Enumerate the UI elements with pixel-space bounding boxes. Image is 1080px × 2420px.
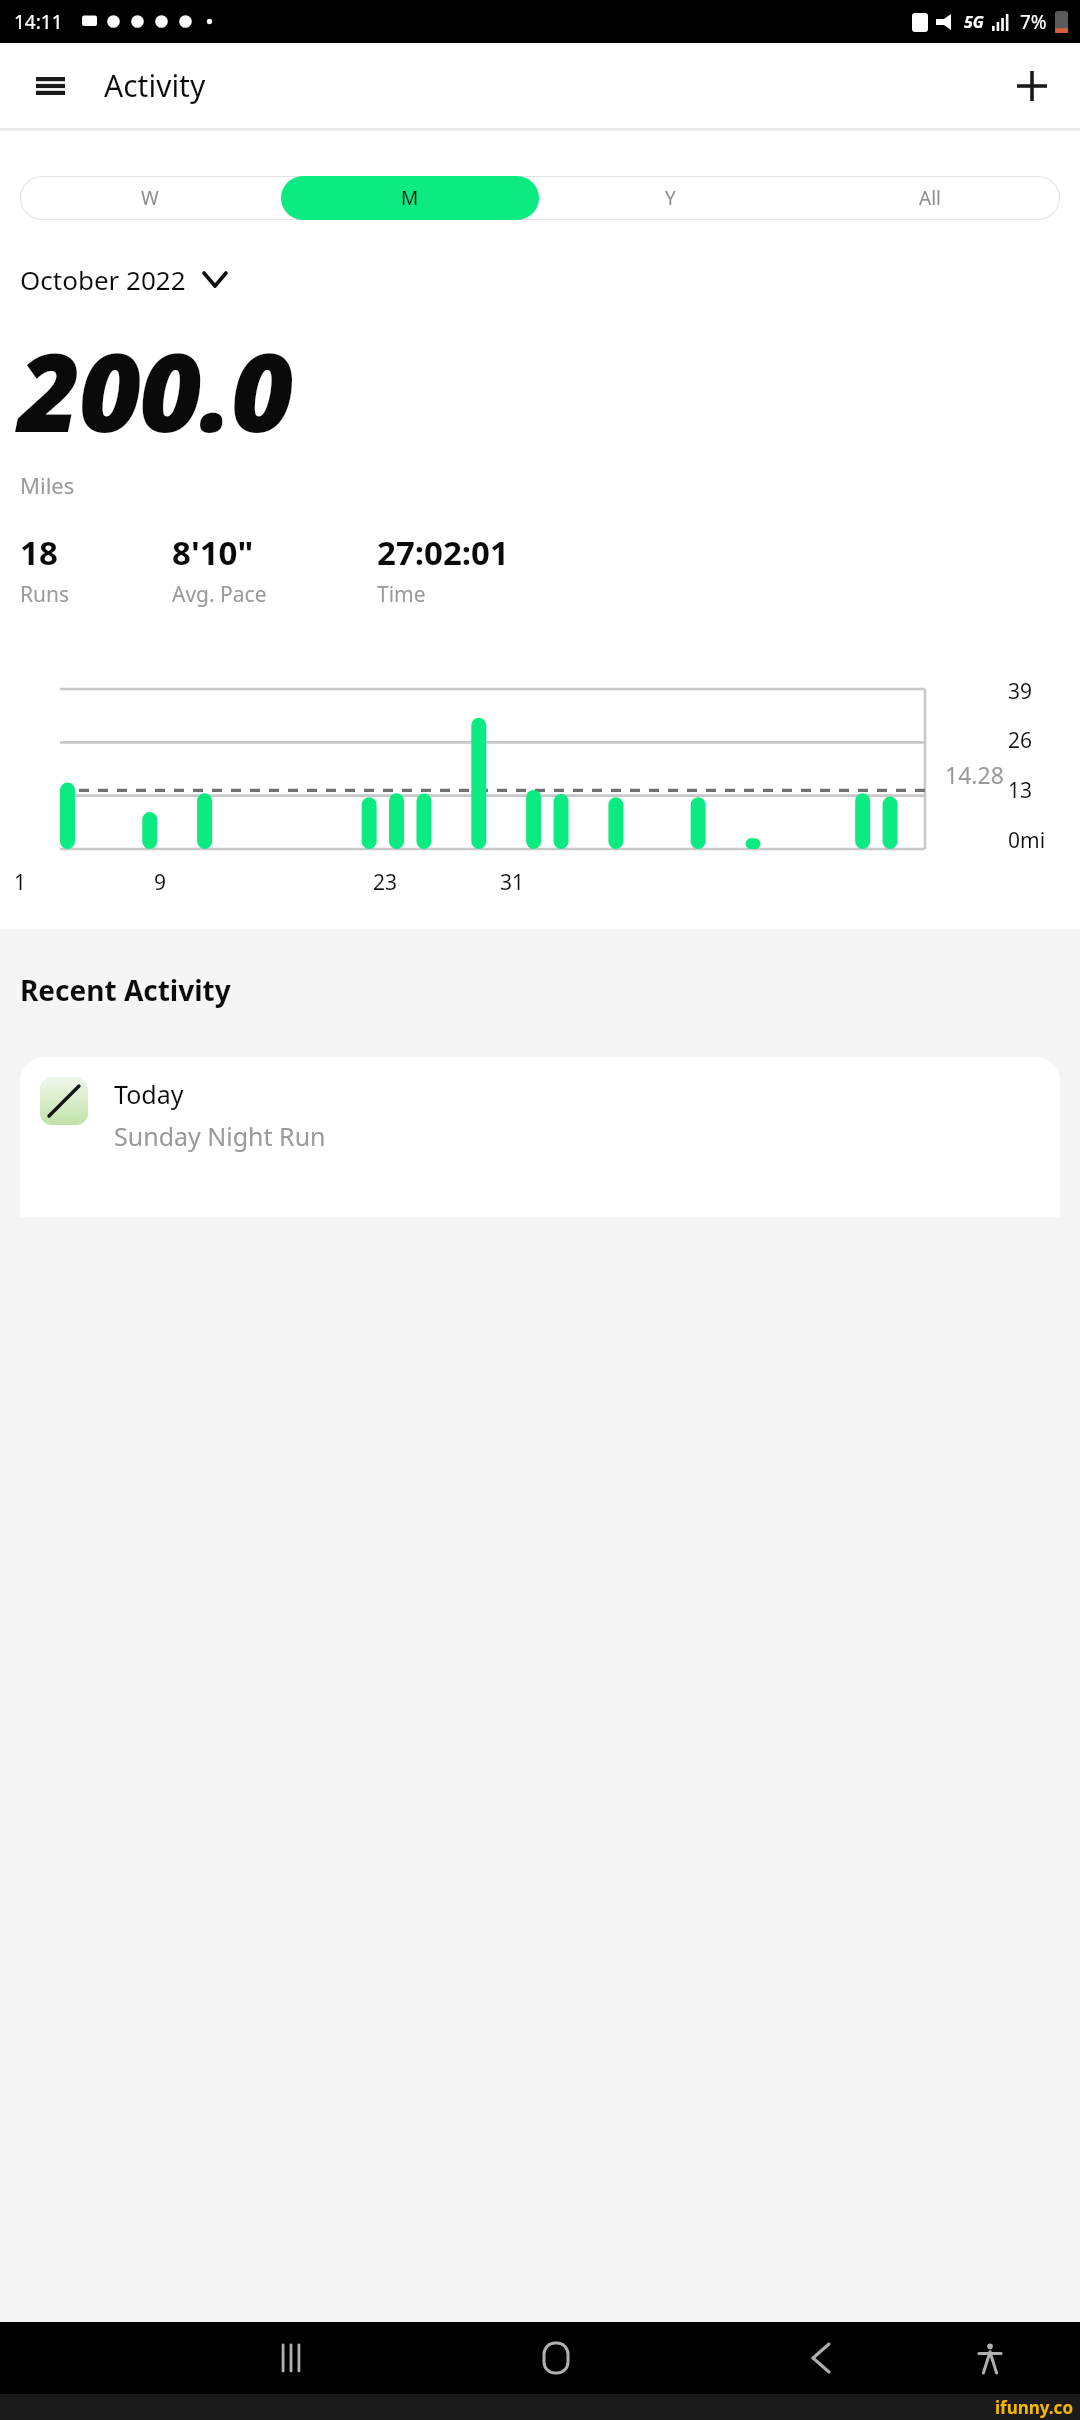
staticText: 1 xyxy=(14,868,27,897)
button[interactable]: M xyxy=(281,176,539,220)
staticText: Time xyxy=(377,580,426,609)
staticText: 39 xyxy=(1008,677,1033,706)
staticText: October 2022 xyxy=(20,262,186,297)
staticText: 7% xyxy=(1020,9,1047,35)
staticText: Y xyxy=(665,185,676,211)
staticText: 13 xyxy=(1008,776,1033,805)
staticText: Miles xyxy=(20,470,75,500)
staticText: 23 xyxy=(373,868,398,897)
staticText: 200.0 xyxy=(18,317,292,464)
button[interactable]: Back xyxy=(795,2332,847,2384)
staticText: 26 xyxy=(1008,726,1033,755)
staticText: All xyxy=(919,185,941,211)
staticText: 31 xyxy=(500,868,525,897)
staticText: M xyxy=(401,185,419,211)
staticText: 14.28 xyxy=(945,759,1004,790)
button[interactable]: Recents xyxy=(265,2332,317,2384)
staticText: Activity xyxy=(104,65,206,106)
button[interactable]: Home xyxy=(530,2332,582,2384)
button[interactable]: W xyxy=(21,176,279,220)
button[interactable]: Accessibility xyxy=(964,2332,1016,2384)
staticText: Avg. Pace xyxy=(172,580,267,609)
staticText: W xyxy=(141,185,159,211)
staticText: 27:02:01 xyxy=(377,530,509,575)
button[interactable]: Menu xyxy=(22,58,78,114)
button[interactable]: Today xyxy=(20,1057,1060,1217)
staticText: 14:11 xyxy=(14,9,63,35)
staticText: 18 xyxy=(20,530,58,575)
staticText: Runs xyxy=(20,580,70,609)
staticText: Sunday Night Run xyxy=(114,1119,326,1153)
staticText: 5G xyxy=(964,11,984,33)
button[interactable]: All xyxy=(801,176,1059,220)
staticText: Recent Activity xyxy=(20,971,231,1009)
button[interactable]: October 2022 xyxy=(20,262,226,297)
staticText: 9 xyxy=(154,868,167,897)
staticText: ifunny.co xyxy=(995,2396,1074,2419)
staticText: Today xyxy=(114,1077,184,1111)
button[interactable]: Add xyxy=(1004,58,1060,114)
staticText: 0mi xyxy=(1008,826,1046,855)
button[interactable]: Y xyxy=(541,176,799,220)
staticText: 8'10" xyxy=(172,530,254,575)
